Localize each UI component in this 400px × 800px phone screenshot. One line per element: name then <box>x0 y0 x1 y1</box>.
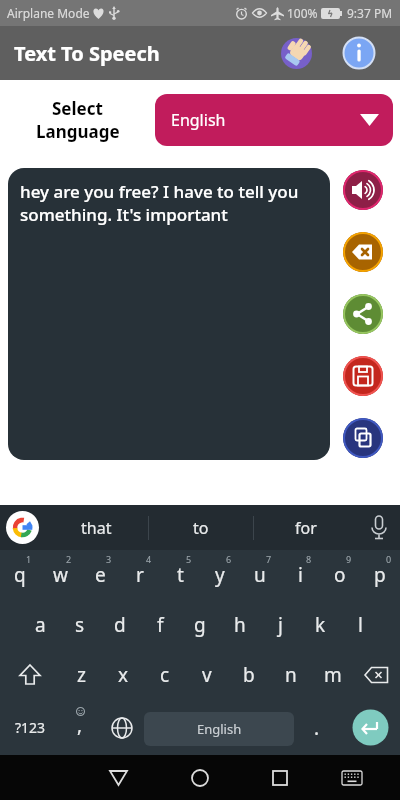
staticText: Select <box>52 97 103 120</box>
staticText: r <box>136 562 144 588</box>
button[interactable]: h <box>220 600 260 650</box>
button[interactable]: r <box>120 550 160 600</box>
staticText: ?123 <box>15 718 46 737</box>
button[interactable]: n <box>270 650 312 700</box>
button[interactable]: g <box>180 600 220 650</box>
staticText: x <box>118 662 129 688</box>
staticText: 9:37 PM <box>347 5 393 21</box>
staticText: Language <box>36 120 120 143</box>
staticText: , <box>77 712 83 738</box>
button[interactable]: o <box>320 550 360 600</box>
button[interactable]: u <box>240 550 280 600</box>
staticText: 3 <box>106 553 112 565</box>
staticText: n <box>285 662 297 688</box>
staticText: l <box>358 612 363 638</box>
staticText: h <box>234 612 246 638</box>
staticText: s <box>75 612 85 638</box>
staticText: y <box>215 562 225 588</box>
button[interactable] <box>94 755 142 800</box>
button[interactable]: m <box>312 650 354 700</box>
staticText: 6 <box>226 553 232 565</box>
button[interactable]: i <box>280 550 320 600</box>
staticText: a <box>35 612 46 638</box>
button[interactable] <box>340 700 400 755</box>
button[interactable]: j <box>260 600 300 650</box>
staticText: b <box>243 662 255 688</box>
button[interactable] <box>0 650 60 700</box>
button[interactable]: a <box>20 600 60 650</box>
button[interactable]: d <box>100 600 140 650</box>
button[interactable]: hey are you free? I have to tell you som… <box>8 168 330 460</box>
staticText: w <box>53 562 68 588</box>
button[interactable] <box>343 232 383 272</box>
button[interactable]: q <box>0 550 40 600</box>
button[interactable] <box>277 33 317 73</box>
staticText: f <box>157 612 164 638</box>
button[interactable]: s <box>60 600 100 650</box>
staticText: k <box>315 612 326 638</box>
button[interactable]: to <box>149 505 253 550</box>
button[interactable]: f <box>140 600 180 650</box>
button[interactable]: b <box>228 650 270 700</box>
staticText: q <box>14 562 26 588</box>
staticText: o <box>334 562 346 588</box>
button[interactable]: English <box>144 712 294 746</box>
button[interactable] <box>343 170 383 210</box>
staticText: d <box>114 612 126 638</box>
button[interactable] <box>100 700 144 755</box>
staticText: that <box>81 517 112 539</box>
staticText: 0 <box>386 553 392 565</box>
button[interactable] <box>328 755 376 800</box>
button[interactable] <box>343 418 383 458</box>
button[interactable]: c <box>144 650 186 700</box>
staticText: g <box>194 612 206 638</box>
staticText: u <box>254 562 266 588</box>
button[interactable]: l <box>340 600 380 650</box>
staticText: v <box>202 662 212 688</box>
staticText: m <box>324 662 342 688</box>
button[interactable]: ?123 <box>0 700 60 755</box>
staticText: 4 <box>146 553 152 565</box>
button[interactable] <box>339 33 379 73</box>
staticText: hey are you free? I have to tell you som… <box>20 180 299 226</box>
button[interactable] <box>343 356 383 396</box>
staticText: j <box>278 612 283 638</box>
button[interactable]: y <box>200 550 240 600</box>
button[interactable] <box>256 755 304 800</box>
button[interactable]: v <box>186 650 228 700</box>
staticText: 8 <box>306 553 312 565</box>
staticText: English <box>197 720 242 738</box>
button[interactable]: English <box>155 94 393 146</box>
button[interactable] <box>354 650 400 700</box>
button[interactable] <box>343 294 383 334</box>
staticText: Airplane Mode <box>7 5 90 21</box>
button[interactable]: for <box>254 505 358 550</box>
staticText: . <box>314 715 320 741</box>
staticText: 100% <box>287 5 318 21</box>
staticText: 9 <box>346 553 352 565</box>
staticText: c <box>160 662 170 688</box>
button[interactable] <box>358 507 400 549</box>
staticText: t <box>177 562 184 588</box>
button[interactable]: z <box>60 650 102 700</box>
staticText: 2 <box>66 553 72 565</box>
button[interactable]: . <box>294 700 340 755</box>
button[interactable]: t <box>160 550 200 600</box>
button[interactable]: x <box>102 650 144 700</box>
staticText: i <box>298 562 303 588</box>
staticText: English <box>171 109 226 131</box>
button[interactable]: p <box>360 550 400 600</box>
button[interactable]: that <box>45 505 148 550</box>
staticText: 7 <box>266 553 272 565</box>
staticText: for <box>295 517 317 539</box>
staticText: p <box>374 562 386 588</box>
staticText: e <box>95 562 106 588</box>
button[interactable] <box>0 505 45 550</box>
staticText: 1 <box>26 553 32 565</box>
button[interactable]: , <box>60 700 100 755</box>
button[interactable] <box>176 755 224 800</box>
staticText: to <box>193 517 209 539</box>
button[interactable]: w <box>40 550 80 600</box>
button[interactable]: e <box>80 550 120 600</box>
button[interactable]: k <box>300 600 340 650</box>
